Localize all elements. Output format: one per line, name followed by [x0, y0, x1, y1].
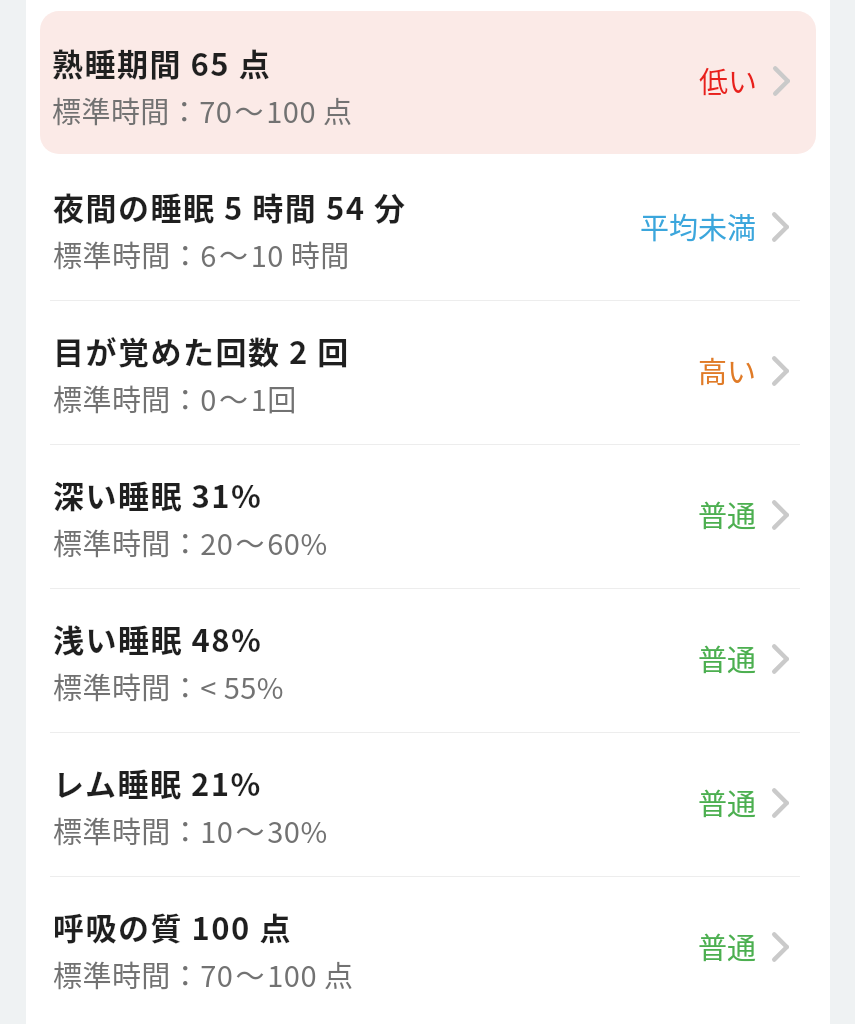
staticText: 夜間の睡眠 5 時間 54 分 — [53, 184, 407, 229]
staticText: 標準時間：20 〜 60% — [53, 521, 328, 563]
staticText: 普通 — [698, 781, 757, 823]
staticText: 呼吸の質 100 点 — [53, 904, 292, 949]
button[interactable]: 深い睡眠 31% — [26, 445, 830, 588]
staticText: 標準時間：70 〜 100 点 — [52, 89, 353, 131]
other: 詳細を開く — [773, 65, 790, 97]
other: 詳細を開く — [772, 499, 789, 531]
button[interactable]: 浅い睡眠 48% — [26, 589, 830, 732]
button[interactable]: 熟睡期間 65 点 — [40, 11, 816, 154]
button[interactable]: レム睡眠 21% — [26, 733, 830, 876]
other: 詳細を開く — [772, 787, 789, 819]
staticText: 低い — [699, 59, 758, 101]
button[interactable]: 夜間の睡眠 5 時間 54 分 — [26, 157, 830, 300]
staticText: 標準時間：10 〜 30% — [53, 809, 328, 851]
staticText: 熟睡期間 65 点 — [52, 40, 272, 85]
staticText: 普通 — [698, 637, 757, 679]
staticText: 普通 — [698, 925, 757, 967]
staticText: 標準時間：0 〜 1回 — [53, 377, 297, 419]
other: 詳細を開く — [772, 931, 789, 963]
other: 詳細を開く — [772, 211, 789, 243]
staticText: 深い睡眠 31% — [53, 472, 263, 517]
other: 詳細を開く — [772, 355, 789, 387]
staticText: 高い — [698, 349, 757, 391]
staticText: 標準時間：< 55% — [53, 665, 284, 707]
staticText: 普通 — [698, 493, 757, 535]
other: 詳細を開く — [772, 643, 789, 675]
staticText: 目が覚めた回数 2 回 — [53, 328, 350, 373]
staticText: 標準時間：70 〜 100 点 — [53, 953, 354, 995]
staticText: 平均未満 — [640, 205, 757, 247]
staticText: 浅い睡眠 48% — [53, 616, 263, 661]
staticText: 標準時間：6 〜 10 時間 — [53, 233, 350, 275]
button[interactable]: 目が覚めた回数 2 回 — [26, 301, 830, 444]
staticText: レム睡眠 21% — [53, 760, 262, 805]
button[interactable]: 呼吸の質 100 点 — [26, 877, 830, 1020]
